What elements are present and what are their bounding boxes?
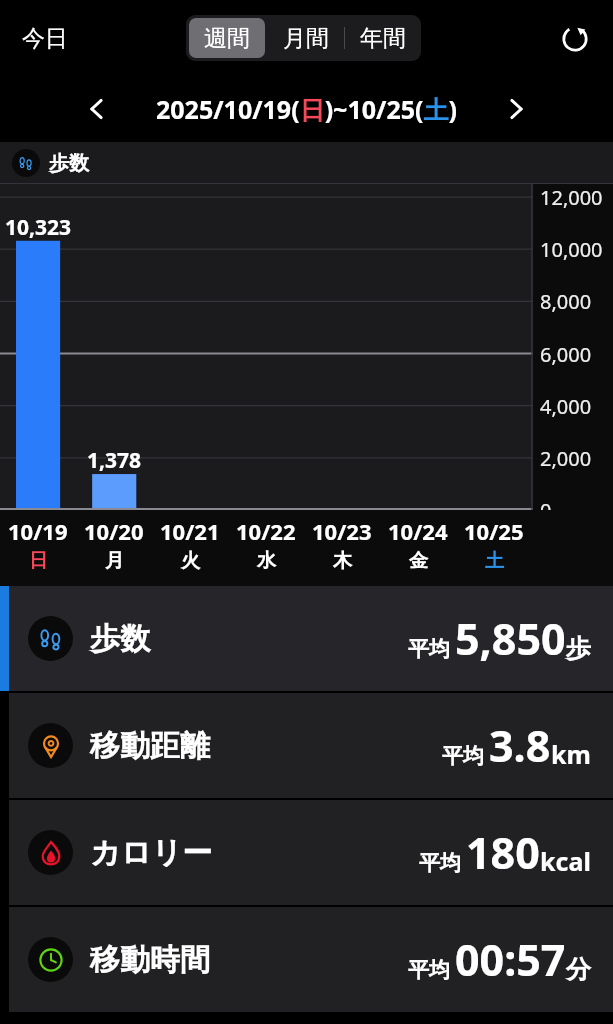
staticText: km (551, 737, 591, 771)
staticText: 週間 (204, 24, 250, 52)
staticText: 10/22 (236, 516, 296, 546)
staticText: 月 (105, 549, 124, 573)
staticText: 10/19 (8, 516, 68, 546)
staticText: 6,000 (540, 341, 592, 368)
staticText: 1,378 (87, 446, 142, 475)
staticText: 10/20 (84, 516, 144, 546)
staticText: 10,323 (5, 213, 72, 242)
staticText: 水 (257, 549, 276, 573)
staticText: 5,850 (455, 609, 566, 668)
staticText: 移動距離 (90, 727, 210, 765)
staticText: 歩 (566, 633, 591, 664)
staticText: 2025/10/19(日)~10/25(土) (156, 92, 457, 126)
button[interactable]: カロリー (0, 800, 613, 905)
staticText: 平均 (408, 636, 450, 662)
button[interactable]: Previous week (76, 88, 118, 130)
staticText: 移動時間 (90, 941, 210, 979)
button[interactable]: 歩数 (0, 586, 613, 691)
button[interactable]: 週間 (189, 18, 265, 58)
staticText: 00:57 (455, 930, 566, 989)
button[interactable]: 年間 (345, 18, 421, 58)
staticText: 歩数 (90, 620, 150, 658)
staticText: kcal (540, 844, 591, 878)
staticText: 金 (409, 549, 428, 573)
staticText: 火 (181, 549, 200, 573)
button[interactable]: 月間 (268, 18, 344, 58)
button[interactable]: Next week (495, 88, 537, 130)
staticText: 今日 (22, 24, 68, 53)
staticText: 3.8 (489, 716, 551, 775)
staticText: 10/21 (160, 516, 220, 546)
staticText: 土 (485, 549, 504, 573)
staticText: 年間 (360, 24, 406, 52)
staticText: 分 (566, 954, 591, 985)
staticText: 平均 (442, 743, 484, 769)
staticText: 10/23 (312, 516, 372, 546)
button[interactable]: 今日 (14, 18, 76, 59)
staticText: 木 (333, 549, 352, 573)
staticText: 12,000 (540, 184, 603, 211)
staticText: 歩数 (49, 151, 89, 176)
staticText: カロリー (90, 834, 213, 872)
staticText: 8,000 (540, 288, 592, 315)
staticText: 4,000 (540, 393, 592, 420)
staticText: 0 (540, 497, 552, 524)
staticText: 平均 (419, 850, 461, 876)
button[interactable]: 移動距離 (0, 693, 613, 798)
staticText: 日 (29, 549, 48, 573)
button[interactable]: Refresh (553, 16, 597, 60)
staticText: 10,000 (540, 236, 603, 263)
staticText: 10/24 (388, 516, 448, 546)
staticText: 2,000 (540, 445, 592, 472)
staticText: 月間 (283, 24, 329, 52)
staticText: 平均 (408, 957, 450, 983)
button[interactable]: 移動時間 (0, 907, 613, 1012)
staticText: 10/25 (464, 516, 524, 546)
staticText: 180 (466, 823, 540, 882)
